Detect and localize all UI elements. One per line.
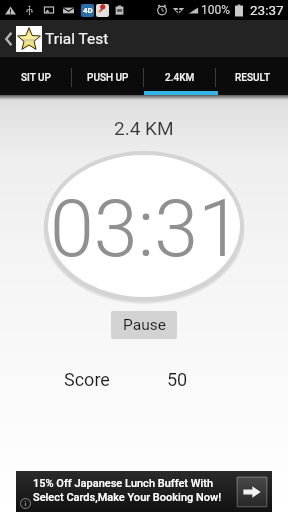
staticText: Score (64, 369, 110, 390)
staticText: 100% (201, 3, 231, 17)
button[interactable]: PUSH UP (72, 57, 144, 95)
staticText: 15% Off Japanese Lunch Buffet With (33, 477, 214, 490)
staticText: SIT UP (21, 72, 51, 84)
staticText: PUSH UP (87, 72, 129, 84)
staticText: Select Cards,Make Your Booking Now! (33, 491, 222, 504)
button[interactable]: SIT UP (0, 57, 72, 95)
staticText: 50 (167, 369, 188, 390)
staticText: Pause (123, 316, 166, 334)
staticText: 2.4 KM (114, 117, 174, 139)
staticText: 2.4KM (165, 72, 195, 84)
staticText: 23:37 (250, 2, 284, 18)
staticText: Trial Test (45, 30, 109, 48)
button[interactable]: Open ad (236, 476, 268, 508)
button[interactable]: 15% Off Japanese Lunch Buffet With (16, 471, 272, 512)
staticText: 4D (83, 6, 93, 15)
staticText: 03:31 (50, 183, 242, 276)
staticText: RESULT (235, 72, 270, 84)
button[interactable]: Pause (111, 311, 177, 339)
button[interactable]: Back (0, 20, 16, 57)
button[interactable]: RESULT (216, 57, 288, 95)
button[interactable]: 2.4KM (144, 57, 216, 95)
button[interactable]: App icon (16, 26, 42, 52)
button[interactable]: Ad information (20, 498, 31, 509)
